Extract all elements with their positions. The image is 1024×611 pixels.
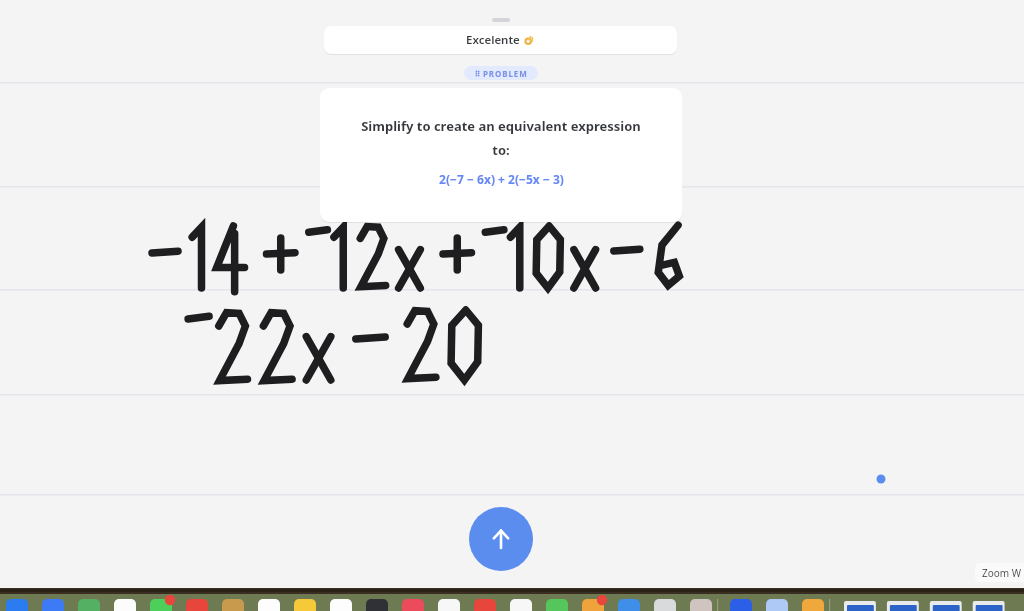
- staticText: to:: [492, 141, 510, 159]
- staticText: Excelente: [466, 32, 523, 48]
- button[interactable]: Simplify to create an equivalent express…: [320, 88, 682, 222]
- button[interactable]: Zoom W: [975, 563, 1024, 582]
- button[interactable]: PROBLEM: [464, 66, 538, 80]
- staticText: PROBLEM: [483, 68, 528, 79]
- staticText: 2(−7 − 6x) + 2(−5x − 3): [439, 171, 564, 187]
- button[interactable]: Submit answer: [469, 507, 533, 571]
- button[interactable]: Excelente: [324, 26, 677, 54]
- staticText: Zoom W: [982, 566, 1022, 580]
- staticText: Simplify to create an equivalent express…: [361, 117, 641, 135]
